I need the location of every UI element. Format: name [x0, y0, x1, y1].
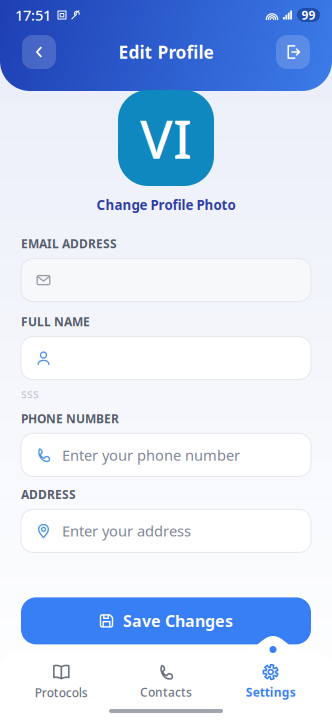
staticText: PHONE NUMBER [21, 410, 119, 426]
staticText: Save Changes [123, 610, 233, 631]
staticText: EMAIL ADDRESS [21, 236, 117, 252]
staticText: Enter your phone number [62, 445, 240, 465]
staticText: FULL NAME [21, 314, 90, 329]
staticText: Change Profile Photo [96, 196, 235, 214]
button[interactable]: Back [22, 35, 56, 69]
staticText: Contacts [140, 684, 192, 700]
staticText: ADDRESS [21, 486, 76, 502]
staticText: sss [21, 386, 39, 401]
staticText: VI [140, 103, 192, 173]
staticText: 99 [301, 7, 315, 23]
button[interactable]: Contacts [114, 658, 218, 706]
button[interactable]: Protocols [9, 658, 114, 706]
button[interactable]: Save Changes [21, 597, 311, 644]
button[interactable]: Log out [276, 35, 310, 69]
button[interactable]: Change Profile Photo [88, 192, 243, 218]
staticText: Settings [246, 684, 296, 700]
staticText: Edit Profile [118, 40, 213, 63]
staticText: Enter your address [62, 521, 191, 541]
staticText: 17:51 [15, 5, 51, 25]
button[interactable]: Settings [218, 658, 323, 706]
staticText: Protocols [35, 684, 88, 700]
